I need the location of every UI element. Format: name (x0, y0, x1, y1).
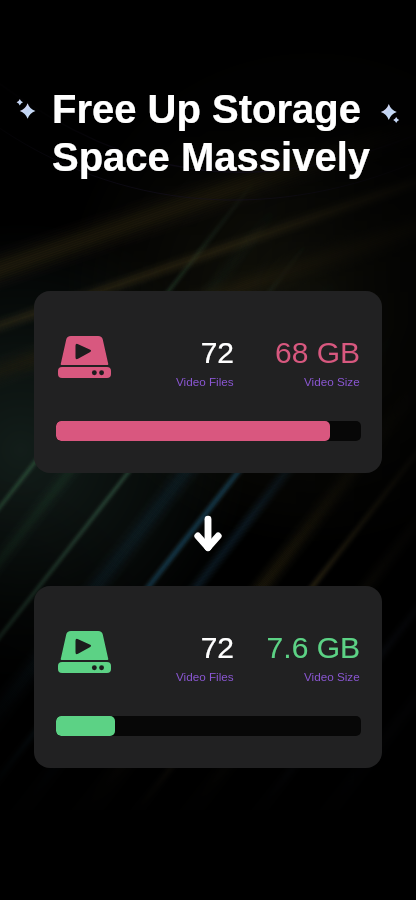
staticText: Video Files (176, 375, 234, 388)
staticText: 72 (200, 631, 234, 665)
staticText: Video Size (304, 375, 360, 388)
button[interactable]: 72 (34, 586, 382, 768)
staticText: Free Up Storage (52, 87, 361, 132)
staticText: Video Size (304, 670, 360, 683)
other: Reduce (188, 515, 228, 555)
staticText: Video Files (176, 670, 234, 683)
staticText: 7.6 GB (266, 631, 360, 665)
staticText: 68 GB (274, 336, 360, 370)
staticText: 72 (200, 336, 234, 370)
button[interactable]: 72 (34, 291, 382, 473)
staticText: Space Massively (52, 135, 370, 180)
